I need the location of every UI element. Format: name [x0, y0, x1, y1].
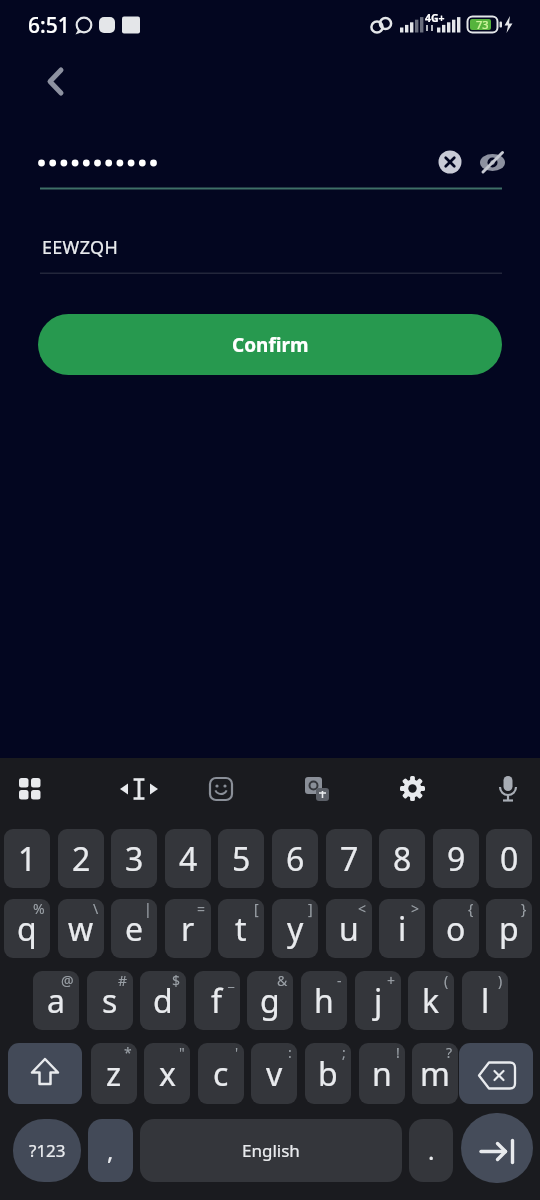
button[interactable] — [459, 1043, 533, 1104]
staticText: 1 — [18, 837, 37, 881]
staticText: i — [398, 907, 407, 951]
staticText: j — [374, 979, 383, 1023]
staticText: : — [288, 1043, 292, 1062]
button[interactable]: . — [409, 1119, 453, 1182]
staticText: o — [446, 907, 466, 951]
button[interactable]: a — [33, 971, 79, 1030]
button[interactable]: y — [272, 899, 318, 958]
staticText: 6:51 — [28, 11, 70, 40]
button[interactable]: 5 — [218, 829, 264, 888]
staticText: 9 — [447, 837, 466, 881]
staticText: < — [358, 899, 367, 918]
button[interactable] — [461, 1113, 533, 1183]
button[interactable]: u — [326, 899, 372, 958]
staticText: , — [107, 1134, 114, 1167]
button[interactable] — [388, 765, 436, 813]
staticText: 4G+ — [425, 11, 445, 25]
button[interactable]: g — [247, 971, 293, 1030]
staticText: | — [144, 899, 152, 918]
button[interactable]: e — [111, 899, 157, 958]
staticText: f — [211, 979, 223, 1023]
staticText: { — [468, 899, 474, 918]
button[interactable]: 2 — [58, 829, 104, 888]
staticText: l — [481, 979, 490, 1023]
button[interactable]: 6 — [272, 829, 318, 888]
button[interactable]: 8 — [379, 829, 425, 888]
button[interactable]: 9 — [433, 829, 479, 888]
staticText: $ — [172, 971, 181, 990]
button[interactable]: 0 — [486, 829, 532, 888]
button[interactable]: i — [379, 899, 425, 958]
staticText: 0 — [500, 837, 519, 881]
button[interactable] — [476, 146, 508, 178]
button[interactable]: x — [144, 1043, 190, 1104]
staticText: ( — [444, 971, 449, 990]
button[interactable]: k — [408, 971, 454, 1030]
button[interactable]: j — [355, 971, 401, 1030]
staticText: 8 — [393, 837, 412, 881]
staticText: . — [428, 1134, 435, 1167]
button[interactable]: t — [218, 899, 264, 958]
staticText: ? — [446, 1043, 453, 1062]
button[interactable]: q — [4, 899, 50, 958]
staticText: _ — [228, 971, 235, 990]
button[interactable]: v — [251, 1043, 297, 1104]
staticText: - — [337, 971, 342, 990]
staticText: \ — [93, 899, 99, 918]
staticText: 4 — [179, 837, 198, 881]
button[interactable]: f — [194, 971, 240, 1030]
staticText: w — [68, 907, 94, 951]
staticText: v — [266, 1052, 283, 1096]
button[interactable] — [434, 146, 466, 178]
button[interactable]: p — [486, 899, 532, 958]
button[interactable]: d — [140, 971, 186, 1030]
button[interactable] — [115, 765, 163, 813]
button[interactable] — [8, 1043, 82, 1104]
button[interactable]: o — [433, 899, 479, 958]
staticText: ! — [396, 1043, 400, 1062]
button[interactable]: r — [165, 899, 211, 958]
staticText: " — [179, 1043, 185, 1062]
button[interactable]: b — [305, 1043, 351, 1104]
staticText: a — [47, 979, 65, 1023]
button[interactable] — [292, 765, 340, 813]
button[interactable]: l — [462, 971, 508, 1030]
button[interactable] — [30, 138, 420, 190]
button[interactable]: 4 — [165, 829, 211, 888]
staticText: 6 — [286, 837, 305, 881]
button[interactable]: ?123 — [13, 1119, 81, 1182]
staticText: ' — [235, 1043, 239, 1062]
button[interactable]: m — [412, 1043, 458, 1104]
button[interactable] — [484, 765, 532, 813]
button[interactable]: 1 — [4, 829, 50, 888]
button[interactable] — [6, 765, 54, 813]
button[interactable]: 3 — [111, 829, 157, 888]
button[interactable] — [36, 58, 80, 102]
staticText: > — [411, 899, 420, 918]
button[interactable]: c — [198, 1043, 244, 1104]
button[interactable]: s — [87, 971, 133, 1030]
staticText: [ — [254, 899, 259, 918]
staticText: ; — [342, 1043, 346, 1062]
button[interactable]: z — [91, 1043, 137, 1104]
button[interactable]: , — [88, 1119, 133, 1182]
staticText: p — [499, 907, 519, 951]
button[interactable]: w — [58, 899, 104, 958]
staticText: * — [124, 1043, 132, 1062]
staticText: n — [372, 1052, 392, 1096]
button[interactable]: Confirm — [38, 314, 502, 375]
staticText: + — [387, 971, 396, 990]
button[interactable]: h — [301, 971, 347, 1030]
staticText: 3 — [125, 837, 144, 881]
button[interactable]: English — [140, 1119, 402, 1182]
staticText: e — [125, 907, 144, 951]
button[interactable]: n — [359, 1043, 405, 1104]
button[interactable]: 7 — [326, 829, 372, 888]
staticText: b — [318, 1052, 338, 1096]
button[interactable]: EEWZQH — [30, 225, 510, 270]
staticText: q — [17, 907, 37, 951]
staticText: ?123 — [29, 1139, 66, 1162]
button[interactable] — [197, 765, 245, 813]
staticText: z — [106, 1052, 122, 1096]
staticText: Confirm — [232, 332, 309, 358]
